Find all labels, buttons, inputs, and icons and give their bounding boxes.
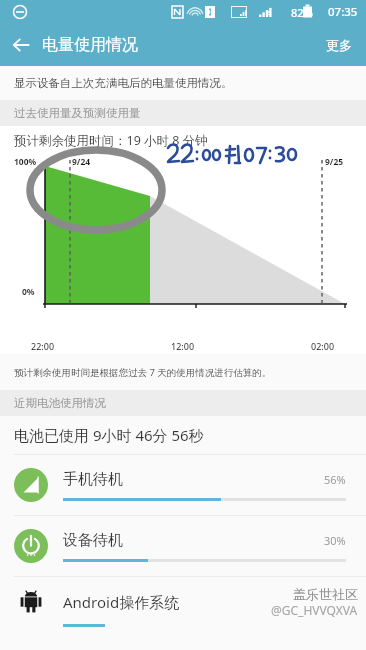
staticText: 设备待机 [63,531,123,550]
staticText: 过去使用量及预测使用量 [14,106,141,120]
staticText: 12:00 [171,340,195,352]
staticText: 56% [324,472,346,487]
staticText: 显示设备自上次充满电后的电量使用情况。 [14,76,233,90]
staticText: 100% [14,156,37,168]
button[interactable]: Android操作系统 [0,577,366,627]
button[interactable]: 设备待机 [0,516,366,576]
button[interactable]: Back [0,24,42,66]
staticText: 近期电池使用情况 [14,396,106,410]
staticText: 22:00 [31,340,55,352]
staticText: 07:35 [328,4,358,20]
staticText: 预计剩余使用时间是根据您过去 7 天的使用情况进行估算的。 [14,366,272,379]
staticText: 02:00 [311,340,335,352]
staticText: E [267,9,271,16]
button[interactable]: 手机待机 [0,455,366,515]
staticText: 9/24 [72,156,91,168]
staticText: 电量使用情况 [42,35,138,55]
staticText: 手机待机 [63,470,123,489]
button[interactable]: 更多 [312,27,366,63]
staticText: 30% [324,533,346,548]
staticText: 预计剩余使用时间：19 小时 8 分钟 [14,132,208,149]
staticText: 盖乐世社区 [293,586,358,602]
staticText: 82% [291,5,313,20]
staticText: @GC_HVVQXVA [271,602,358,618]
staticText: 4G [207,8,215,16]
staticText: Android操作系统 [63,592,180,612]
staticText: 电池已使用 9小时 46分 56秒 [14,425,204,445]
staticText: 9/25 [325,156,344,168]
staticText: 0% [22,286,35,298]
staticText: 更多 [326,37,352,53]
